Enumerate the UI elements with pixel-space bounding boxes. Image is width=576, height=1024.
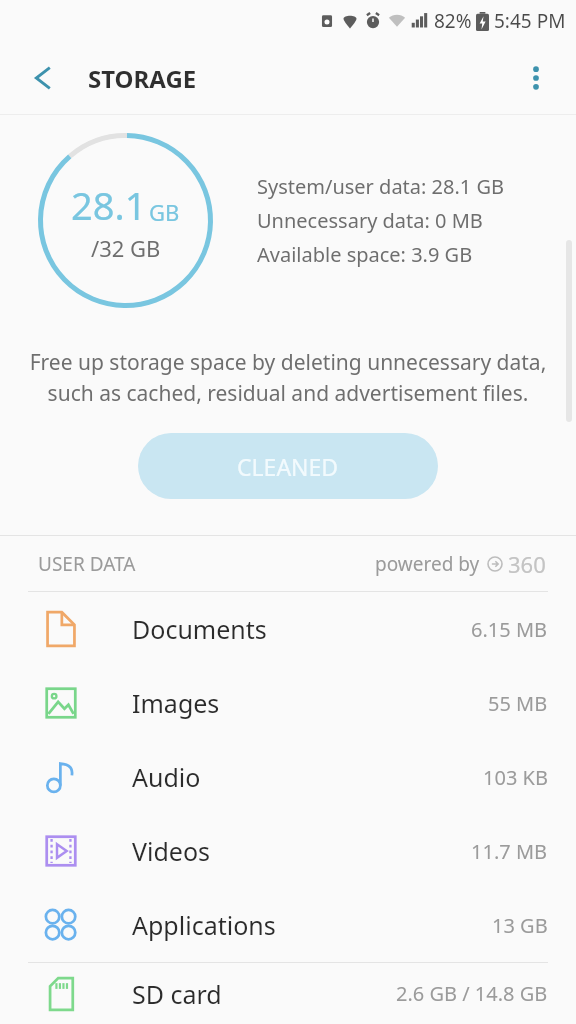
staticText: Available space: 3.9 GB bbox=[257, 241, 473, 268]
button[interactable]: Images bbox=[0, 666, 576, 740]
staticText: Videos bbox=[132, 834, 211, 868]
staticText: 6.15 MB bbox=[471, 616, 548, 643]
staticText: Audio bbox=[132, 760, 201, 794]
button[interactable]: CLEANED bbox=[138, 433, 438, 499]
staticText: Documents bbox=[132, 612, 267, 646]
staticText: SD card bbox=[132, 977, 222, 1011]
staticText: 13 GB bbox=[492, 912, 548, 939]
button[interactable]: SD card bbox=[0, 963, 576, 1024]
staticText: USER DATA bbox=[38, 551, 136, 577]
staticText: CLEANED bbox=[237, 451, 339, 482]
button[interactable]: Applications bbox=[0, 888, 576, 962]
staticText: GB bbox=[149, 197, 180, 227]
button[interactable]: Audio bbox=[0, 740, 576, 814]
staticText: 360 bbox=[508, 549, 546, 579]
button[interactable]: Videos bbox=[0, 814, 576, 888]
staticText: Free up storage space by deleting unnece… bbox=[26, 348, 550, 407]
staticText: Images bbox=[132, 686, 220, 720]
staticText: 5:45 PM bbox=[494, 8, 566, 34]
staticText: Applications bbox=[132, 908, 276, 942]
button[interactable]: More options bbox=[510, 52, 562, 104]
staticText: 103 KB bbox=[483, 764, 548, 791]
staticText: System/user data: 28.1 GB bbox=[257, 173, 505, 200]
staticText: 11.7 MB bbox=[471, 838, 548, 865]
staticText: /32 GB bbox=[91, 233, 161, 263]
staticText: 2.6 GB / 14.8 GB bbox=[396, 980, 548, 1007]
staticText: 55 MB bbox=[488, 690, 548, 717]
button[interactable]: Documents bbox=[0, 592, 576, 666]
staticText: Unnecessary data: 0 MB bbox=[257, 207, 483, 234]
staticText: STORAGE bbox=[88, 62, 197, 95]
staticText: powered by bbox=[375, 551, 480, 577]
button[interactable]: Back bbox=[16, 52, 68, 104]
staticText: 82% bbox=[434, 8, 472, 34]
staticText: 28.1 bbox=[71, 179, 147, 231]
